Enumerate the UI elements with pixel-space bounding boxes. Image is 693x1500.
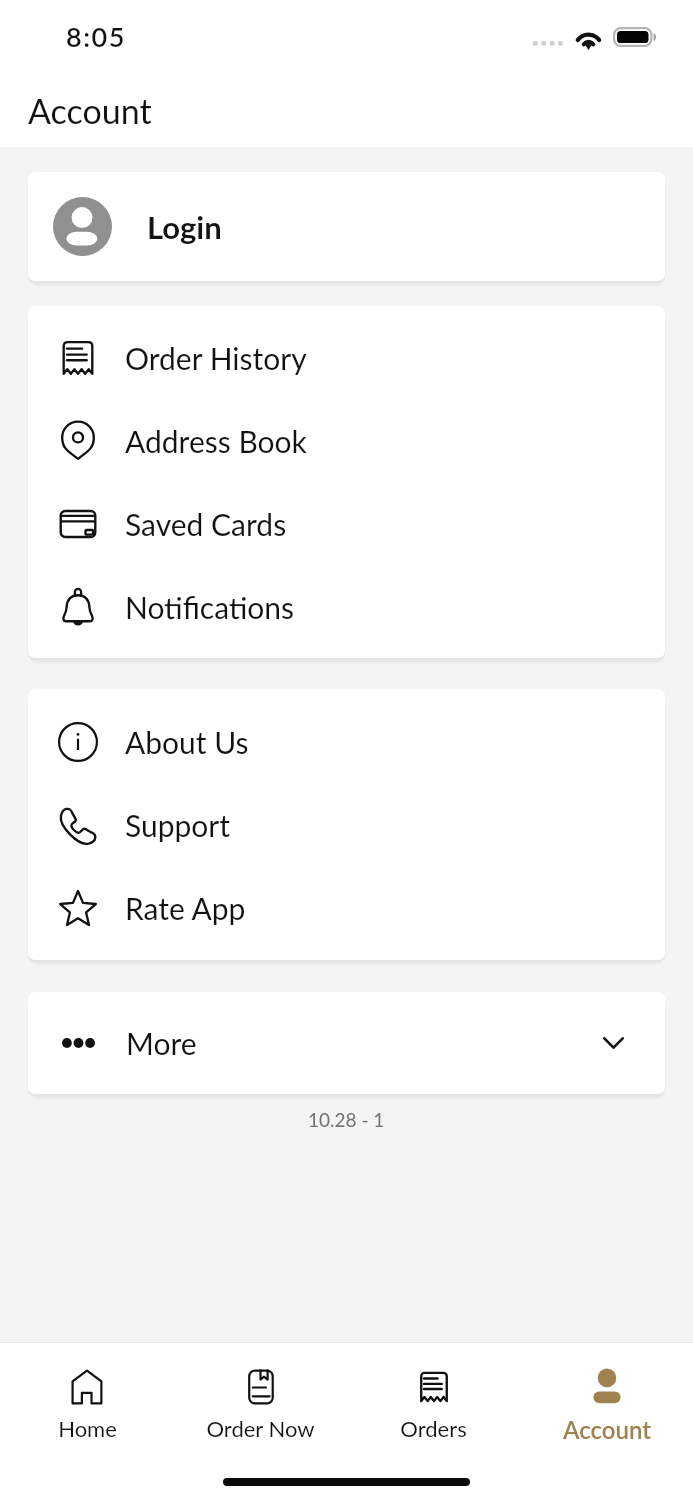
- staticText: Support: [125, 807, 231, 843]
- staticText: 10.28 - 1: [308, 1108, 385, 1131]
- button[interactable]: Support: [28, 783, 665, 866]
- staticText: Rate App: [125, 890, 246, 926]
- button[interactable]: Home: [0, 1343, 174, 1458]
- staticText: Account: [563, 1415, 651, 1444]
- button[interactable]: More: [28, 992, 665, 1094]
- staticText: Orders: [400, 1415, 467, 1441]
- staticText: More: [126, 1025, 197, 1061]
- button[interactable]: Order History: [28, 316, 665, 399]
- staticText: Order Now: [206, 1415, 315, 1441]
- button[interactable]: Login: [28, 172, 665, 281]
- button[interactable]: Orders: [347, 1343, 520, 1458]
- staticText: Login: [147, 208, 222, 245]
- staticText: Saved Cards: [125, 506, 287, 542]
- button[interactable]: Saved Cards: [28, 482, 665, 565]
- staticText: Account: [28, 90, 152, 131]
- staticText: 8:05: [66, 20, 126, 52]
- staticText: About Us: [125, 724, 249, 760]
- button[interactable]: Account: [520, 1343, 693, 1458]
- button[interactable]: Notifications: [28, 565, 665, 648]
- button[interactable]: Rate App: [28, 866, 665, 949]
- staticText: Home: [58, 1415, 117, 1441]
- button[interactable]: Address Book: [28, 399, 665, 482]
- staticText: Notifications: [125, 589, 295, 625]
- button[interactable]: Order Now: [174, 1343, 347, 1458]
- staticText: Order History: [125, 340, 307, 376]
- staticText: Address Book: [125, 423, 307, 459]
- button[interactable]: About Us: [28, 700, 665, 783]
